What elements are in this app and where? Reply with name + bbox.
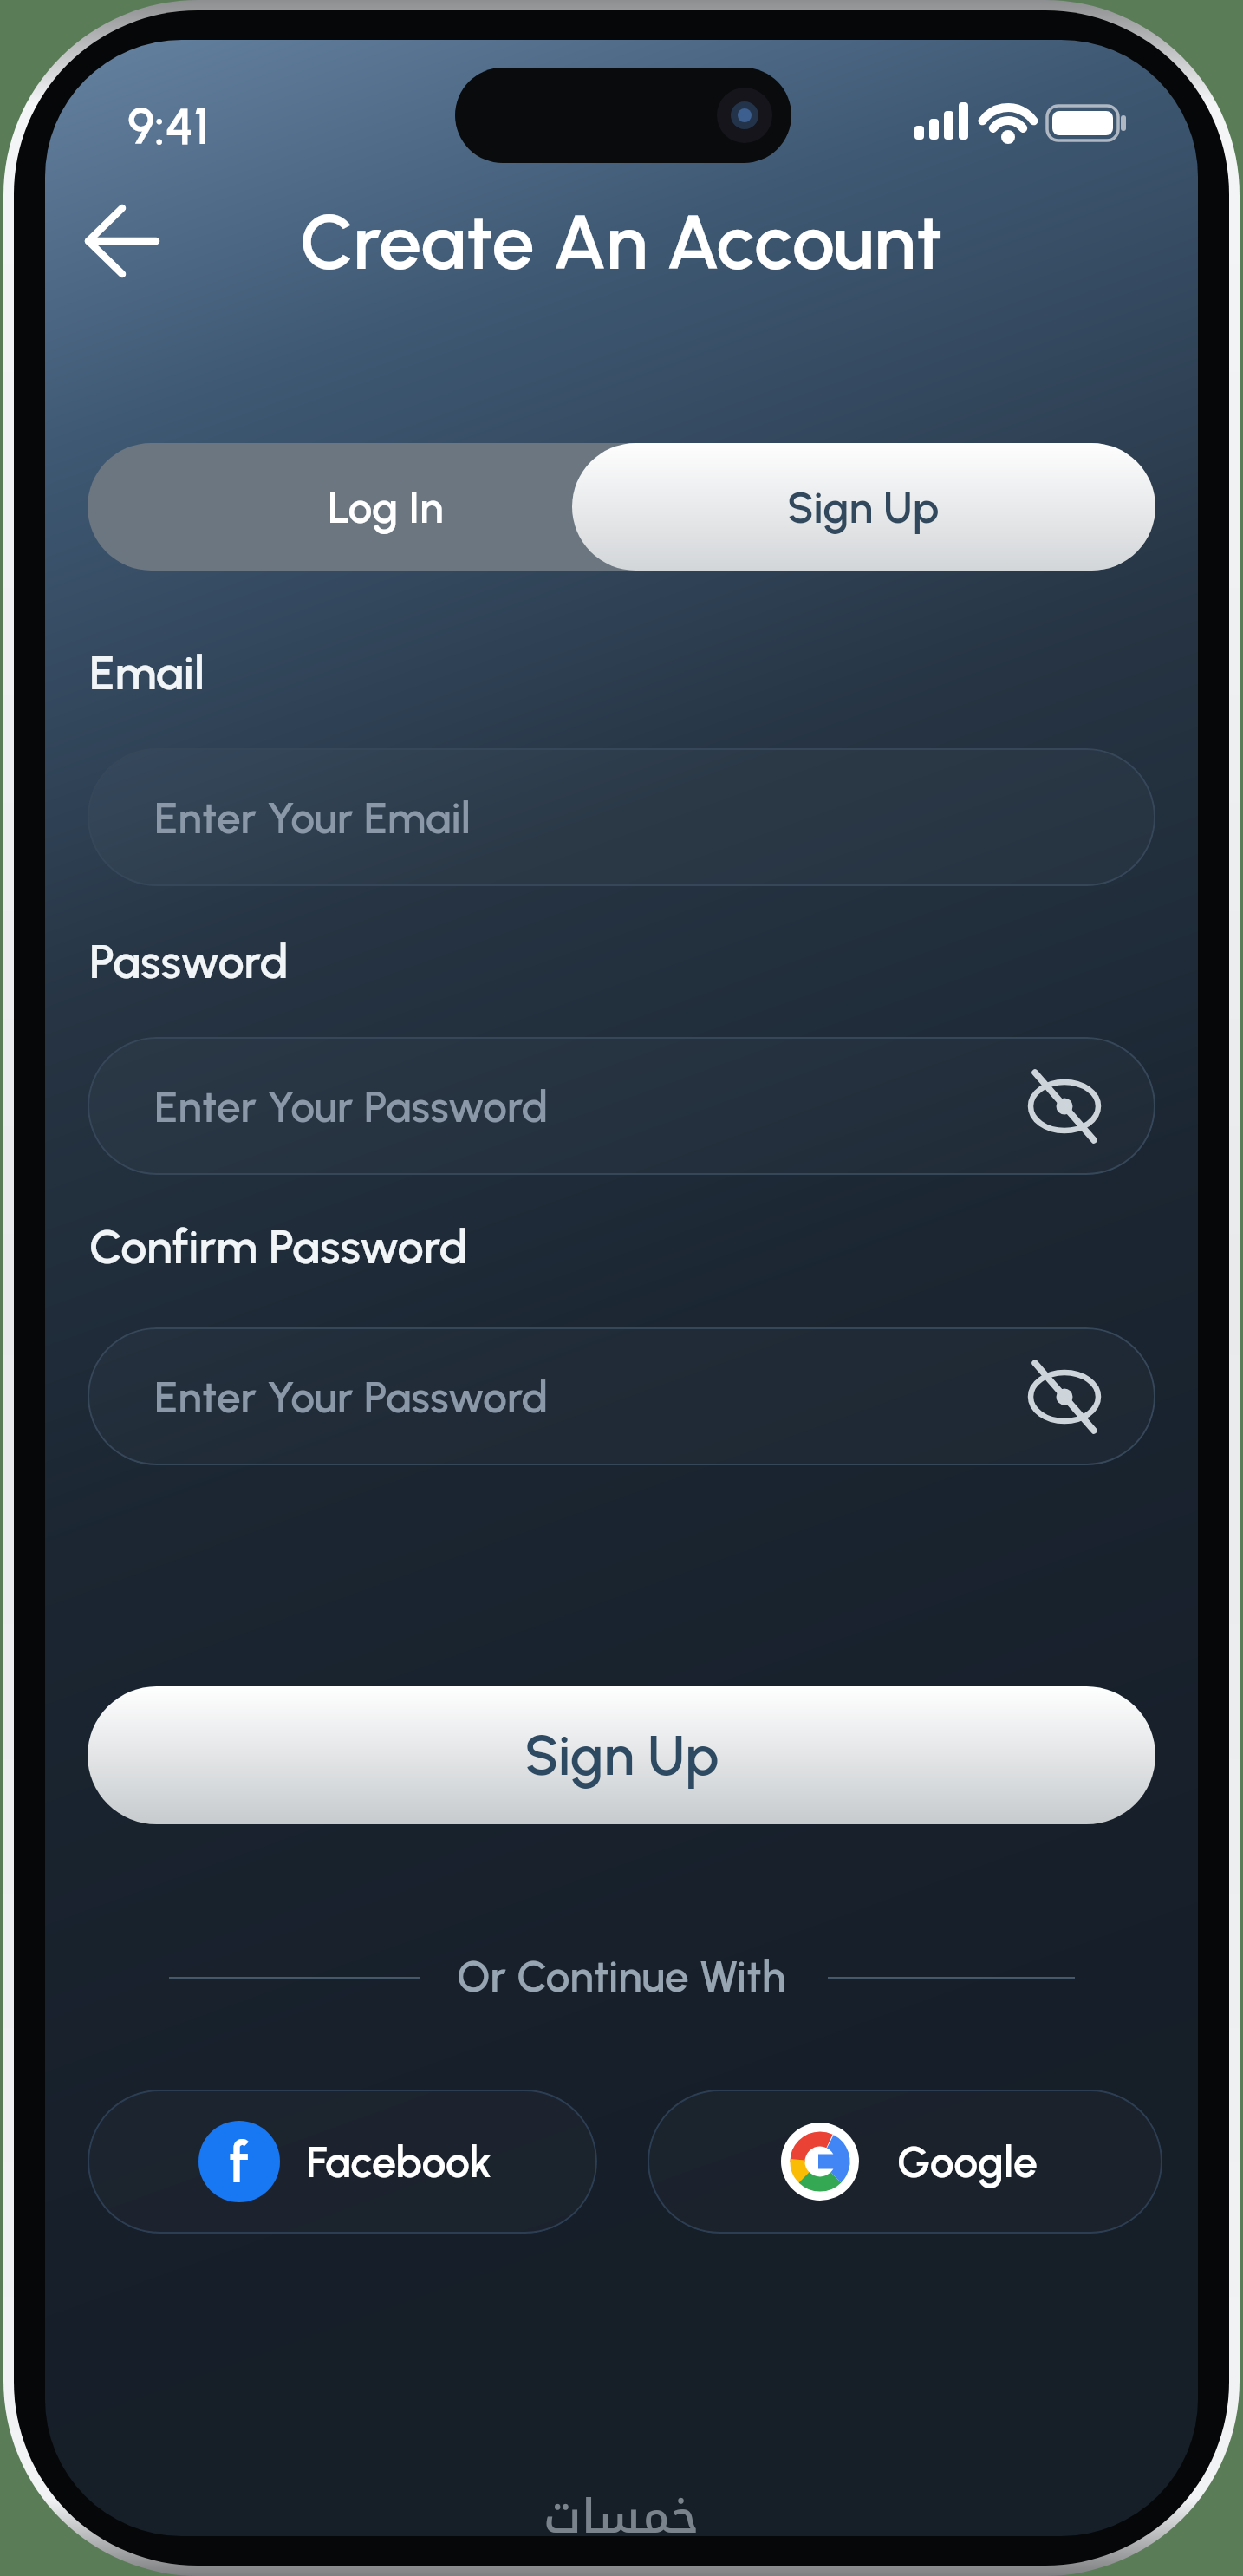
staticText: Google	[897, 2136, 1038, 2188]
staticText: Password	[89, 934, 289, 990]
button[interactable]: Enter Your Email	[88, 748, 1155, 886]
staticText: Sign Up	[787, 481, 940, 533]
staticText: f	[229, 2128, 250, 2196]
staticText: Confirm Password	[89, 1219, 468, 1275]
staticText: Create An Account	[300, 196, 943, 286]
staticText: Log In	[328, 481, 444, 533]
staticText: Sign Up	[524, 1722, 719, 1789]
button[interactable]: Enter Your Password	[88, 1037, 1155, 1175]
staticText: Enter Your Email	[154, 792, 471, 844]
staticText: خمسات	[543, 2473, 700, 2534]
staticText: 9:41	[127, 96, 210, 155]
staticText: Enter Your Password	[154, 1080, 549, 1132]
button[interactable]: Enter Your Password	[88, 1327, 1155, 1465]
staticText: Email	[89, 645, 205, 701]
button[interactable]: f	[88, 2090, 597, 2234]
button[interactable]: Google	[648, 2090, 1162, 2234]
staticText: Enter Your Password	[154, 1371, 549, 1423]
button[interactable]: Sign Up	[88, 1686, 1155, 1824]
button[interactable]	[572, 443, 1155, 571]
button[interactable]: Log In	[247, 443, 524, 571]
staticText: Facebook	[306, 2136, 492, 2188]
staticText: Or Continue With	[457, 1950, 786, 2002]
button[interactable]	[69, 199, 173, 286]
